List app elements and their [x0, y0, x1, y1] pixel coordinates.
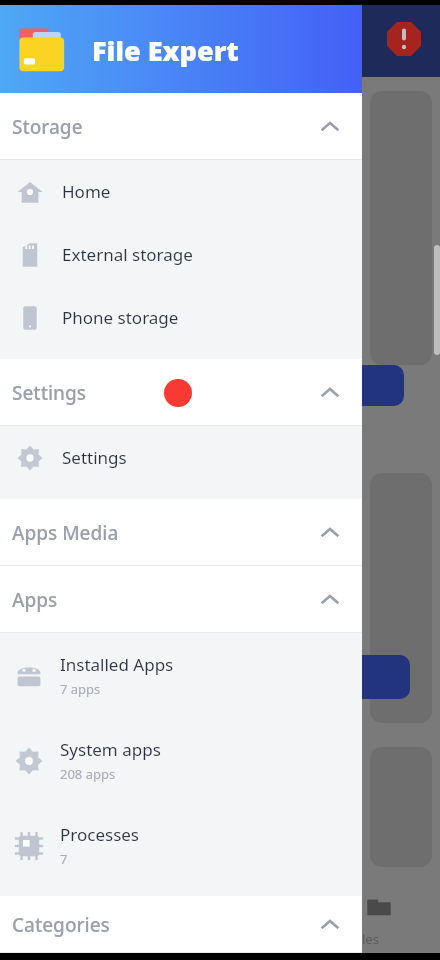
- button[interactable]: Home: [0, 160, 362, 223]
- staticText: Processes: [60, 823, 140, 846]
- button[interactable]: [352, 655, 410, 699]
- staticText: Apps: [12, 587, 58, 613]
- button[interactable]: External storage: [0, 223, 362, 286]
- staticText: Settings: [62, 446, 127, 469]
- staticText: External storage: [62, 243, 193, 266]
- staticText: Categories: [12, 912, 110, 938]
- button[interactable]: Processes: [0, 803, 362, 888]
- button[interactable]: [352, 365, 404, 406]
- button[interactable]: Categories: [0, 896, 362, 953]
- staticText: 208 apps: [60, 765, 116, 783]
- staticText: Phone storage: [62, 306, 179, 329]
- staticText: System apps: [60, 738, 161, 761]
- button[interactable]: Installed Apps: [0, 633, 362, 718]
- button[interactable]: System apps: [0, 718, 362, 803]
- staticText: Apps Media: [12, 520, 119, 546]
- staticText: Installed Apps: [60, 653, 174, 676]
- staticText: Settings: [12, 380, 86, 406]
- button[interactable]: Apps: [0, 566, 362, 633]
- staticText: 7: [60, 850, 68, 868]
- button[interactable]: Apps Media: [0, 499, 362, 566]
- staticText: File Expert: [92, 32, 239, 69]
- staticText: Home: [62, 180, 111, 203]
- button[interactable]: Settings: [0, 426, 362, 489]
- staticText: les: [362, 930, 379, 948]
- button[interactable]: Settings: [0, 359, 362, 426]
- button[interactable]: Storage: [0, 93, 362, 160]
- button[interactable]: Phone storage: [0, 286, 362, 349]
- staticText: 7 apps: [60, 680, 101, 698]
- button[interactable]: Warning: [384, 19, 424, 59]
- staticText: Storage: [12, 114, 83, 140]
